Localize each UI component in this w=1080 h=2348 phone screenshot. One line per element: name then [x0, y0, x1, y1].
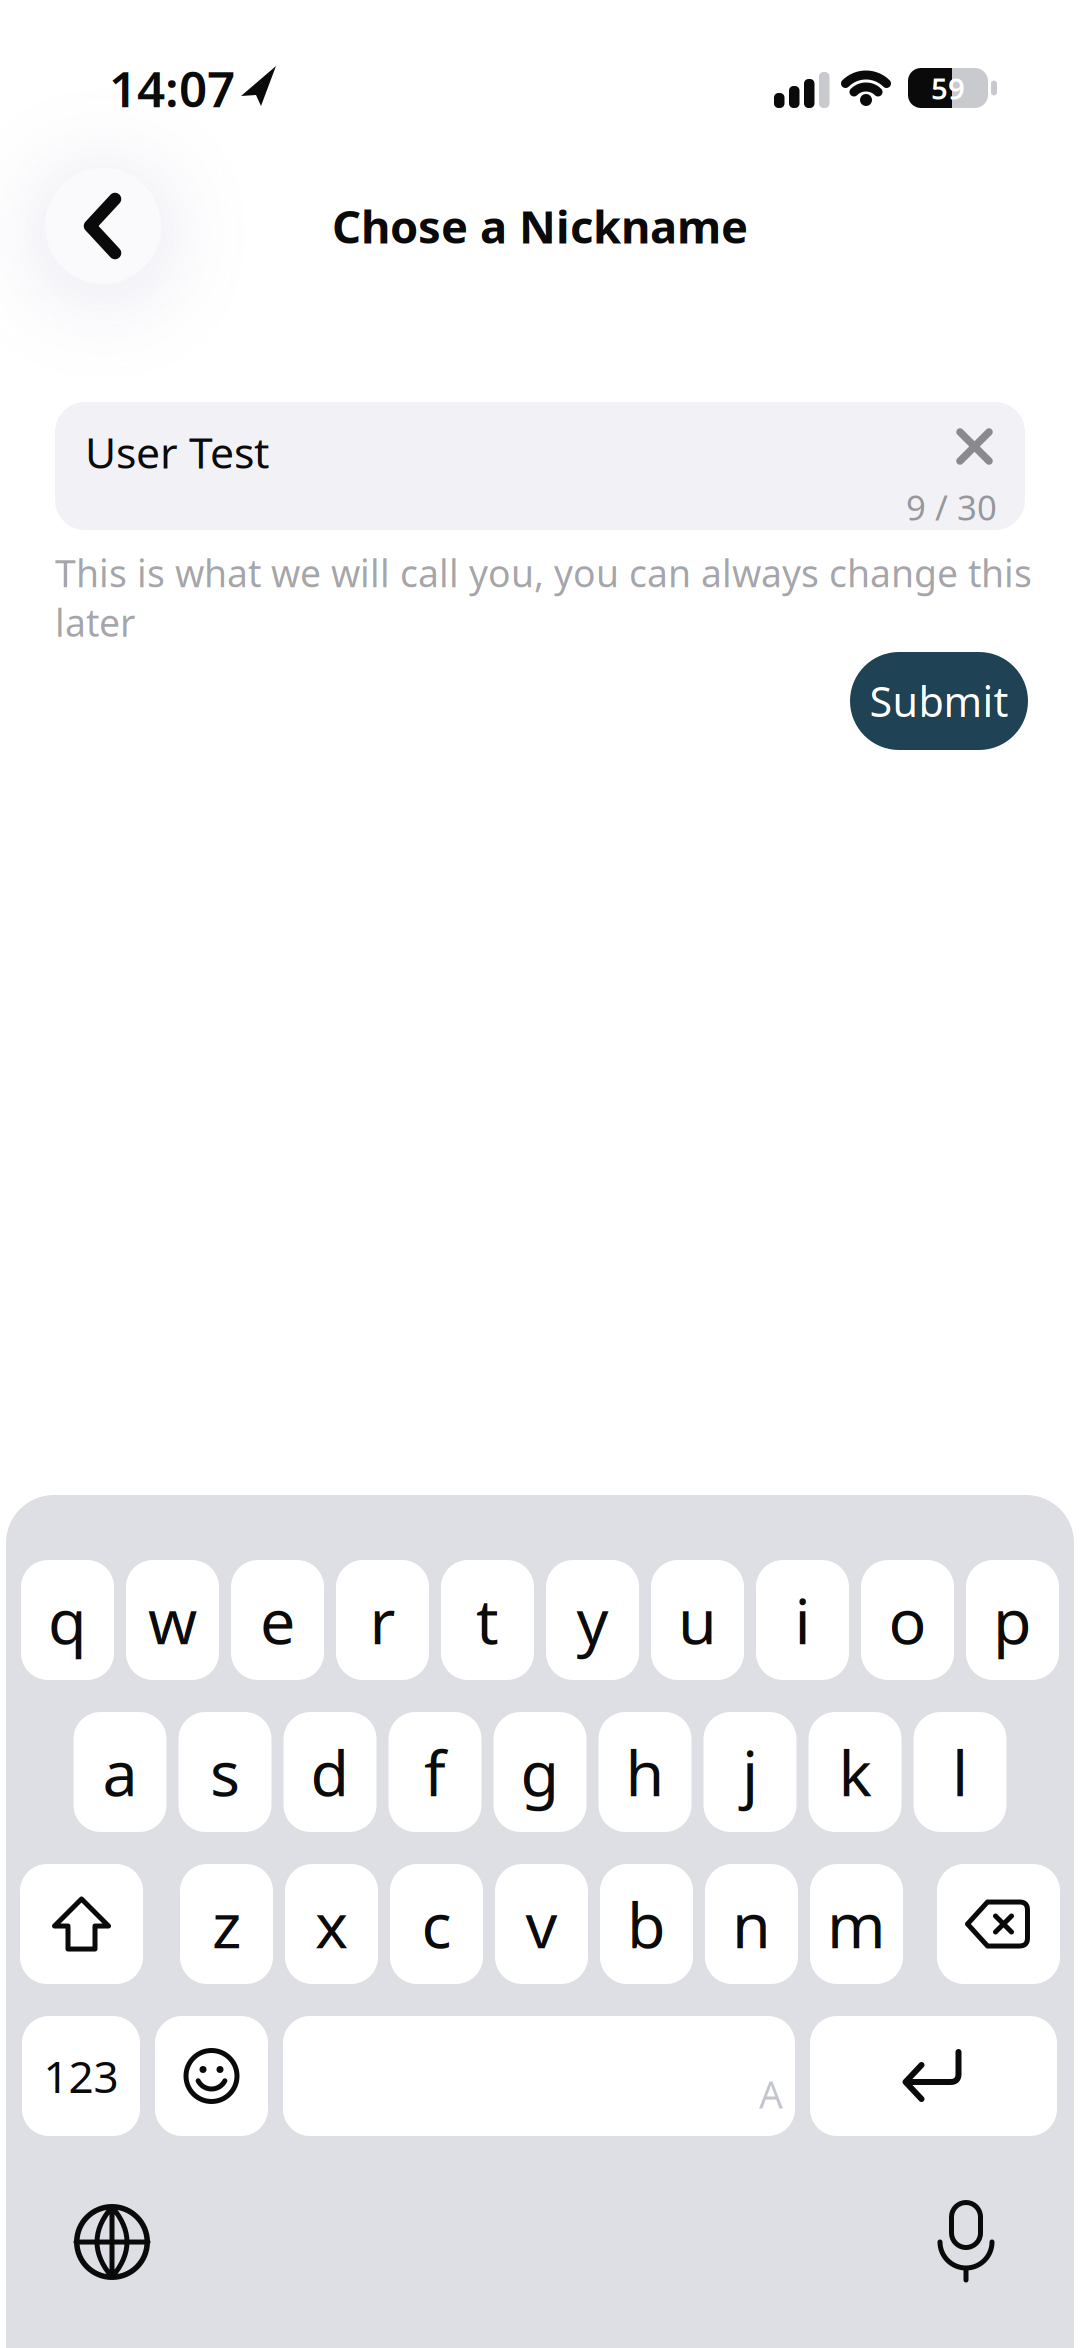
- button[interactable]: [72, 2202, 152, 2282]
- staticText: 14:07: [109, 55, 235, 121]
- button[interactable]: [810, 2016, 1057, 2136]
- staticText: s: [210, 1730, 240, 1814]
- button[interactable]: r: [336, 1560, 429, 1680]
- button[interactable]: x: [285, 1864, 378, 1984]
- staticText: This is what we will call you, you can a…: [55, 548, 1032, 647]
- staticText: A: [759, 2069, 783, 2119]
- button[interactable]: l: [913, 1712, 1006, 1832]
- staticText: h: [625, 1730, 664, 1814]
- button[interactable]: A: [283, 2016, 795, 2136]
- staticText: r: [369, 1578, 395, 1662]
- button[interactable]: b: [600, 1864, 693, 1984]
- staticText: k: [838, 1730, 871, 1814]
- staticText: l: [952, 1730, 968, 1814]
- staticText: f: [424, 1730, 446, 1814]
- button[interactable]: y: [546, 1560, 639, 1680]
- button[interactable]: f: [388, 1712, 481, 1832]
- button[interactable]: q: [21, 1560, 114, 1680]
- button[interactable]: n: [705, 1864, 798, 1984]
- button[interactable]: 123: [22, 2016, 140, 2136]
- staticText: w: [148, 1578, 197, 1662]
- staticText: m: [827, 1882, 886, 1966]
- staticText: Chose a Nickname: [332, 196, 748, 256]
- staticText: u: [678, 1578, 717, 1662]
- button[interactable]: t: [441, 1560, 534, 1680]
- staticText: 123: [43, 2047, 118, 2105]
- button[interactable]: d: [283, 1712, 376, 1832]
- staticText: e: [260, 1578, 295, 1662]
- button[interactable]: s: [178, 1712, 271, 1832]
- staticText: 9 / 30: [906, 484, 997, 530]
- staticText: Submit: [869, 674, 1008, 728]
- button[interactable]: p: [966, 1560, 1059, 1680]
- staticText: a: [102, 1730, 137, 1814]
- staticText: b: [627, 1882, 666, 1966]
- staticText: c: [421, 1882, 451, 1966]
- button[interactable]: h: [598, 1712, 691, 1832]
- button[interactable]: c: [390, 1864, 483, 1984]
- staticText: x: [315, 1882, 348, 1966]
- staticText: 59: [931, 68, 965, 107]
- staticText: n: [732, 1882, 771, 1966]
- staticText: p: [993, 1578, 1032, 1662]
- button[interactable]: g: [493, 1712, 586, 1832]
- staticText: User Test: [85, 424, 269, 480]
- button[interactable]: j: [703, 1712, 796, 1832]
- button[interactable]: o: [861, 1560, 954, 1680]
- staticText: v: [525, 1882, 557, 1966]
- button[interactable]: u: [651, 1560, 744, 1680]
- staticText: y: [576, 1578, 608, 1662]
- staticText: o: [888, 1578, 926, 1662]
- button[interactable]: [155, 2016, 268, 2136]
- button[interactable]: z: [180, 1864, 273, 1984]
- button[interactable]: k: [808, 1712, 901, 1832]
- button[interactable]: m: [810, 1864, 903, 1984]
- button[interactable]: a: [73, 1712, 166, 1832]
- staticText: g: [520, 1730, 559, 1814]
- button[interactable]: [937, 1864, 1060, 1984]
- staticText: j: [742, 1730, 758, 1814]
- staticText: z: [212, 1882, 241, 1966]
- button[interactable]: [936, 2200, 996, 2284]
- staticText: t: [476, 1578, 499, 1662]
- button[interactable]: [45, 168, 161, 284]
- staticText: q: [48, 1578, 87, 1662]
- button[interactable]: w: [126, 1560, 219, 1680]
- button[interactable]: i: [756, 1560, 849, 1680]
- button[interactable]: [946, 418, 1003, 475]
- button[interactable]: [20, 1864, 143, 1984]
- button[interactable]: Submit: [850, 652, 1028, 750]
- staticText: d: [310, 1730, 349, 1814]
- button[interactable]: v: [495, 1864, 588, 1984]
- button[interactable]: e: [231, 1560, 324, 1680]
- staticText: i: [794, 1578, 810, 1662]
